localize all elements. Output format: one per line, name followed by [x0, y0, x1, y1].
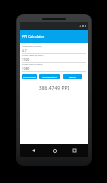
staticText: RESET	[69, 75, 76, 78]
button[interactable]: Back	[27, 144, 40, 157]
button[interactable]: CALCULATE	[22, 74, 37, 79]
button[interactable]: AUTODETECT	[39, 74, 60, 79]
button[interactable]: Screen Width (in pixels)	[22, 62, 86, 71]
staticText: 4.7	[22, 49, 27, 53]
button[interactable]: Recents	[68, 144, 81, 157]
staticText: 1080	[22, 67, 30, 71]
button[interactable]: RESET	[63, 74, 82, 79]
button[interactable]: PPI Calculator	[20, 30, 88, 43]
staticText: AUTODETECT	[42, 75, 57, 78]
button[interactable]: Screen Size (in inches)	[22, 44, 86, 53]
button[interactable]: Screen Height (in pixels)	[22, 53, 86, 62]
staticText: 1920	[22, 58, 30, 62]
staticText: CALCULATE	[23, 75, 36, 78]
staticText: PPI Calculator	[22, 34, 45, 39]
staticText: 386.4749 PPI	[22, 85, 86, 92]
staticText: Screen Size (in inches)	[22, 45, 42, 48]
staticText: Screen Height (in pixels)	[22, 54, 44, 57]
staticText: Screen Width (in pixels)	[22, 63, 43, 66]
button[interactable]: Home	[48, 144, 61, 157]
